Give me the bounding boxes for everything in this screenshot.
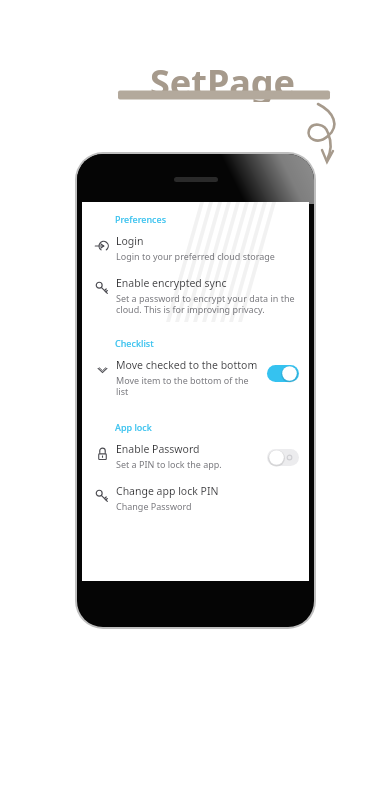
other: Enable password <box>91 443 113 465</box>
other: Login <box>91 235 113 257</box>
other: Encrypted sync <box>91 277 113 299</box>
staticText: Set a PIN to lock the app. <box>116 458 222 470</box>
button[interactable]: Login <box>82 227 309 269</box>
staticText: Preferences <box>115 213 167 225</box>
staticText: Enable Password <box>116 442 200 456</box>
other: Change PIN <box>91 485 113 507</box>
staticText: Login <box>116 234 144 248</box>
other: Move checked <box>91 359 113 381</box>
staticText: Set a password to encrypt your data in t… <box>116 292 295 316</box>
button[interactable]: Change PIN <box>82 477 309 519</box>
staticText: Checklist <box>115 337 154 349</box>
button[interactable]: Enable password <box>82 435 309 477</box>
button[interactable]: Move checked <box>82 351 309 405</box>
button[interactable]: Toggle off <box>267 449 299 466</box>
button[interactable]: Toggle on <box>267 365 299 382</box>
staticText: App lock <box>115 421 152 433</box>
staticText: Change app lock PIN <box>116 484 219 498</box>
staticText: Move checked to the bottom <box>116 358 258 372</box>
staticText: SetPage <box>150 58 296 102</box>
staticText: Login to your preferred cloud storage <box>116 250 275 262</box>
button[interactable]: Encrypted sync <box>82 269 309 323</box>
staticText: Enable encrypted sync <box>116 276 227 290</box>
staticText: Change Password <box>116 500 192 512</box>
staticText: Move item to the bottom of the list <box>116 374 261 398</box>
